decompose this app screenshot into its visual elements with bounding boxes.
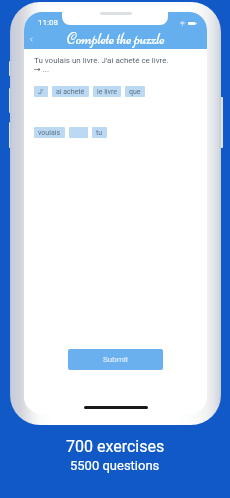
button[interactable]: ai acheté bbox=[52, 86, 89, 97]
staticText: 5500 questions bbox=[70, 458, 160, 473]
button[interactable]: Submit bbox=[68, 349, 163, 370]
button[interactable]: le livre bbox=[93, 86, 121, 97]
button[interactable]: tu bbox=[92, 127, 107, 138]
staticText: → ... bbox=[34, 65, 50, 74]
staticText: 11:08 bbox=[38, 18, 58, 27]
staticText: Tu voulais un livre. J'ai acheté ce livr… bbox=[34, 56, 169, 65]
button[interactable]: voulais bbox=[34, 127, 65, 138]
button[interactable]: que bbox=[125, 86, 145, 97]
staticText: Submit bbox=[103, 355, 129, 364]
staticText: ai acheté bbox=[56, 88, 85, 96]
staticText: J' bbox=[38, 88, 44, 96]
staticText: le livre bbox=[97, 88, 117, 96]
staticText: tu bbox=[96, 129, 103, 137]
staticText: Complete the puzzle bbox=[67, 30, 165, 48]
staticText: voulais bbox=[38, 129, 61, 137]
staticText: 700 exercises bbox=[66, 437, 165, 456]
button[interactable]: J' bbox=[34, 86, 48, 97]
staticText: que bbox=[129, 88, 141, 96]
button[interactable]: Back bbox=[24, 32, 38, 46]
